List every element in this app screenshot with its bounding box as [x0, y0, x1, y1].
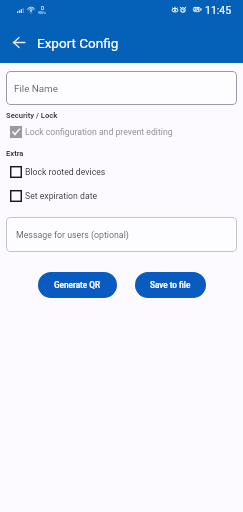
- staticText: Export Config: [37, 35, 119, 51]
- staticText: 24: [194, 7, 200, 12]
- staticText: Save to file: [150, 280, 191, 290]
- staticText: File Name: [14, 83, 58, 94]
- staticText: 11:45: [205, 4, 232, 16]
- staticText: Message for users (optional): [16, 230, 129, 240]
- staticText: KB/s: [38, 11, 46, 15]
- button[interactable]: Lock configuration and prevent editing: [0, 126, 243, 138]
- button[interactable]: File Name: [6, 71, 237, 105]
- staticText: 0: [41, 5, 44, 11]
- button[interactable]: Generate QR: [38, 272, 117, 298]
- button[interactable]: Set expiration date: [0, 190, 243, 202]
- staticText: Lock configuration and prevent editing: [25, 127, 173, 137]
- staticText: Set expiration date: [25, 191, 98, 201]
- staticText: Extra: [6, 149, 24, 158]
- button[interactable]: Block rooted devices: [0, 166, 243, 178]
- staticText: Block rooted devices: [25, 167, 106, 177]
- staticText: Security / Lock: [6, 111, 58, 120]
- button[interactable]: Save to file: [135, 272, 206, 298]
- button[interactable]: Message for users (optional): [6, 217, 237, 252]
- button[interactable]: Back: [7, 30, 31, 54]
- staticText: Generate QR: [54, 280, 101, 290]
